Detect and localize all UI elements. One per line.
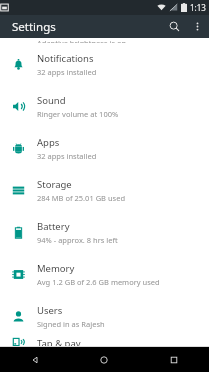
staticText: Ringer volume at 100%: [37, 109, 119, 119]
button[interactable]: Home: [69, 347, 139, 372]
staticText: 32 apps installed: [37, 67, 97, 77]
staticText: Adaptive brightness is on: [37, 38, 127, 43]
staticText: 94% - approx. 8 hrs left: [37, 235, 118, 245]
button[interactable]: Tap & pay: [0, 337, 209, 347]
staticText: Avg 1.2 GB of 2.6 GB memory used: [37, 277, 160, 287]
staticText: Storage: [37, 178, 72, 191]
staticText: Users: [37, 304, 63, 317]
button[interactable]: Battery: [0, 211, 209, 253]
staticText: Memory: [37, 262, 75, 275]
button[interactable]: Memory: [0, 253, 209, 295]
staticText: Notifications: [37, 52, 94, 65]
staticText: Apps: [37, 136, 60, 149]
button[interactable]: Notifications: [0, 43, 209, 85]
button[interactable]: Back: [0, 347, 69, 372]
staticText: 32 apps installed: [37, 151, 97, 161]
staticText: Tap & pay: [37, 337, 81, 347]
staticText: Settings: [12, 19, 56, 35]
button[interactable]: Apps: [0, 127, 209, 169]
button[interactable]: Storage: [0, 169, 209, 211]
button[interactable]: Recent apps: [139, 347, 209, 372]
button[interactable]: More options: [186, 15, 209, 38]
button[interactable]: Users: [0, 295, 209, 337]
staticText: Battery: [37, 220, 70, 233]
staticText: 1:13: [190, 2, 206, 13]
staticText: Signed in as Rajesh: [37, 319, 105, 329]
staticText: 284 MB of 25.01 GB used: [37, 193, 125, 203]
button[interactable]: Search: [163, 15, 186, 38]
staticText: Sound: [37, 94, 66, 107]
button[interactable]: Sound: [0, 85, 209, 127]
